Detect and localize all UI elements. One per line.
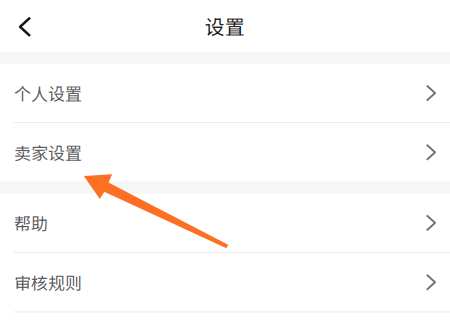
staticText: 个人设置: [14, 81, 82, 105]
staticText: 帮助: [14, 210, 48, 235]
button[interactable]: 个人设置: [0, 64, 450, 122]
staticText: 设置: [205, 11, 245, 40]
button[interactable]: 审核规则: [0, 253, 450, 311]
button[interactable]: 卖家设置: [0, 123, 450, 181]
button[interactable]: Back: [0, 0, 44, 52]
staticText: 卖家设置: [14, 140, 82, 165]
button[interactable]: 帮助: [0, 194, 450, 252]
navigationBar: 设置: [0, 0, 450, 52]
staticText: 审核规则: [14, 270, 82, 294]
